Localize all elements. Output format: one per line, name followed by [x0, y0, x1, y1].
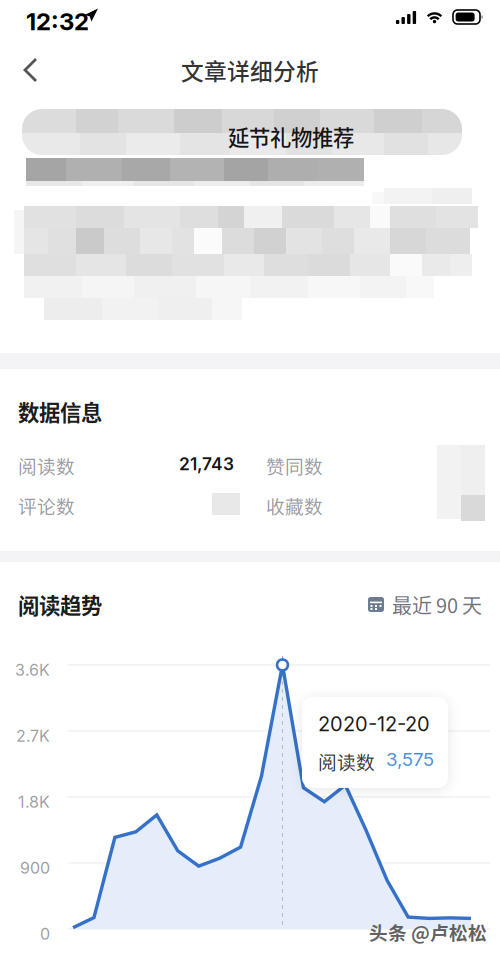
staticText: 延节礼物推荐 — [228, 121, 354, 152]
staticText: 3.6K — [15, 660, 50, 680]
staticText: 1.8K — [18, 792, 50, 812]
staticText: 21,743 — [179, 453, 234, 474]
staticText: 收藏数 — [266, 492, 323, 519]
staticText: 阅读数 — [318, 748, 375, 775]
button[interactable]: 最近 90 天 — [368, 584, 482, 625]
button[interactable]: Back — [0, 45, 59, 95]
staticText: 0 — [40, 924, 50, 944]
staticText: 评论数 — [18, 492, 75, 519]
staticText: 阅读趋势 — [18, 589, 102, 620]
staticText: 3,575 — [386, 748, 434, 771]
staticText: 900 — [20, 858, 50, 878]
staticText: 12:32 — [26, 7, 89, 36]
staticText: 赞同数 — [266, 452, 323, 479]
staticText: 最近 90 天 — [392, 590, 482, 619]
staticText: 头条 @卢松松 — [369, 918, 487, 945]
staticText: 2020-12-20 — [318, 712, 430, 736]
staticText: 阅读数 — [18, 452, 75, 479]
staticText: 文章详细分析 — [181, 54, 319, 86]
staticText: 数据信息 — [18, 396, 102, 427]
staticText: 2.7K — [16, 726, 50, 746]
